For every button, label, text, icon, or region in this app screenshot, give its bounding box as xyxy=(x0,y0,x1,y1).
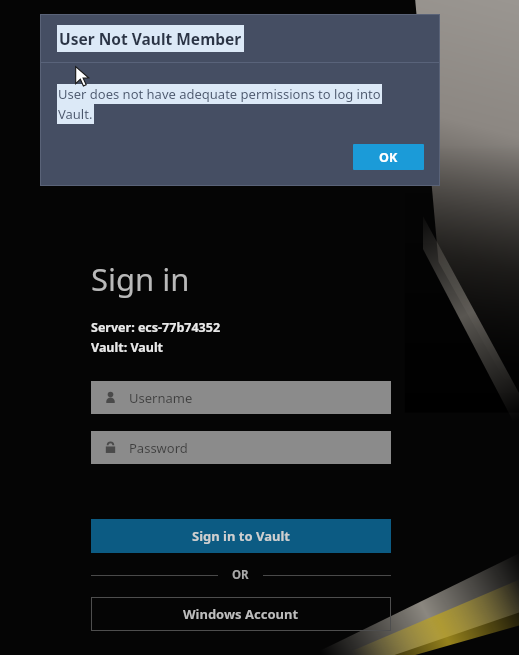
staticText: OR xyxy=(232,567,249,583)
button[interactable]: Password xyxy=(91,431,391,464)
staticText: Vault: Vault xyxy=(91,339,164,356)
button[interactable]: Username xyxy=(91,381,391,414)
staticText: Sign in to Vault xyxy=(192,527,290,545)
staticText: User does not have adequate permissions … xyxy=(58,85,381,103)
staticText: Server: ecs-77b74352 xyxy=(91,319,221,336)
button[interactable]: Sign in to Vault xyxy=(91,519,391,553)
staticText: Vault. xyxy=(58,105,93,123)
staticText: Username xyxy=(129,389,193,407)
staticText: User Not Vault Member xyxy=(59,28,242,49)
staticText: Password xyxy=(129,439,188,457)
staticText: OK xyxy=(379,149,398,166)
staticText: Windows Account xyxy=(183,605,299,623)
staticText: Sign in xyxy=(91,258,190,300)
button[interactable]: Windows Account xyxy=(91,597,391,631)
button[interactable]: OK xyxy=(353,144,424,170)
